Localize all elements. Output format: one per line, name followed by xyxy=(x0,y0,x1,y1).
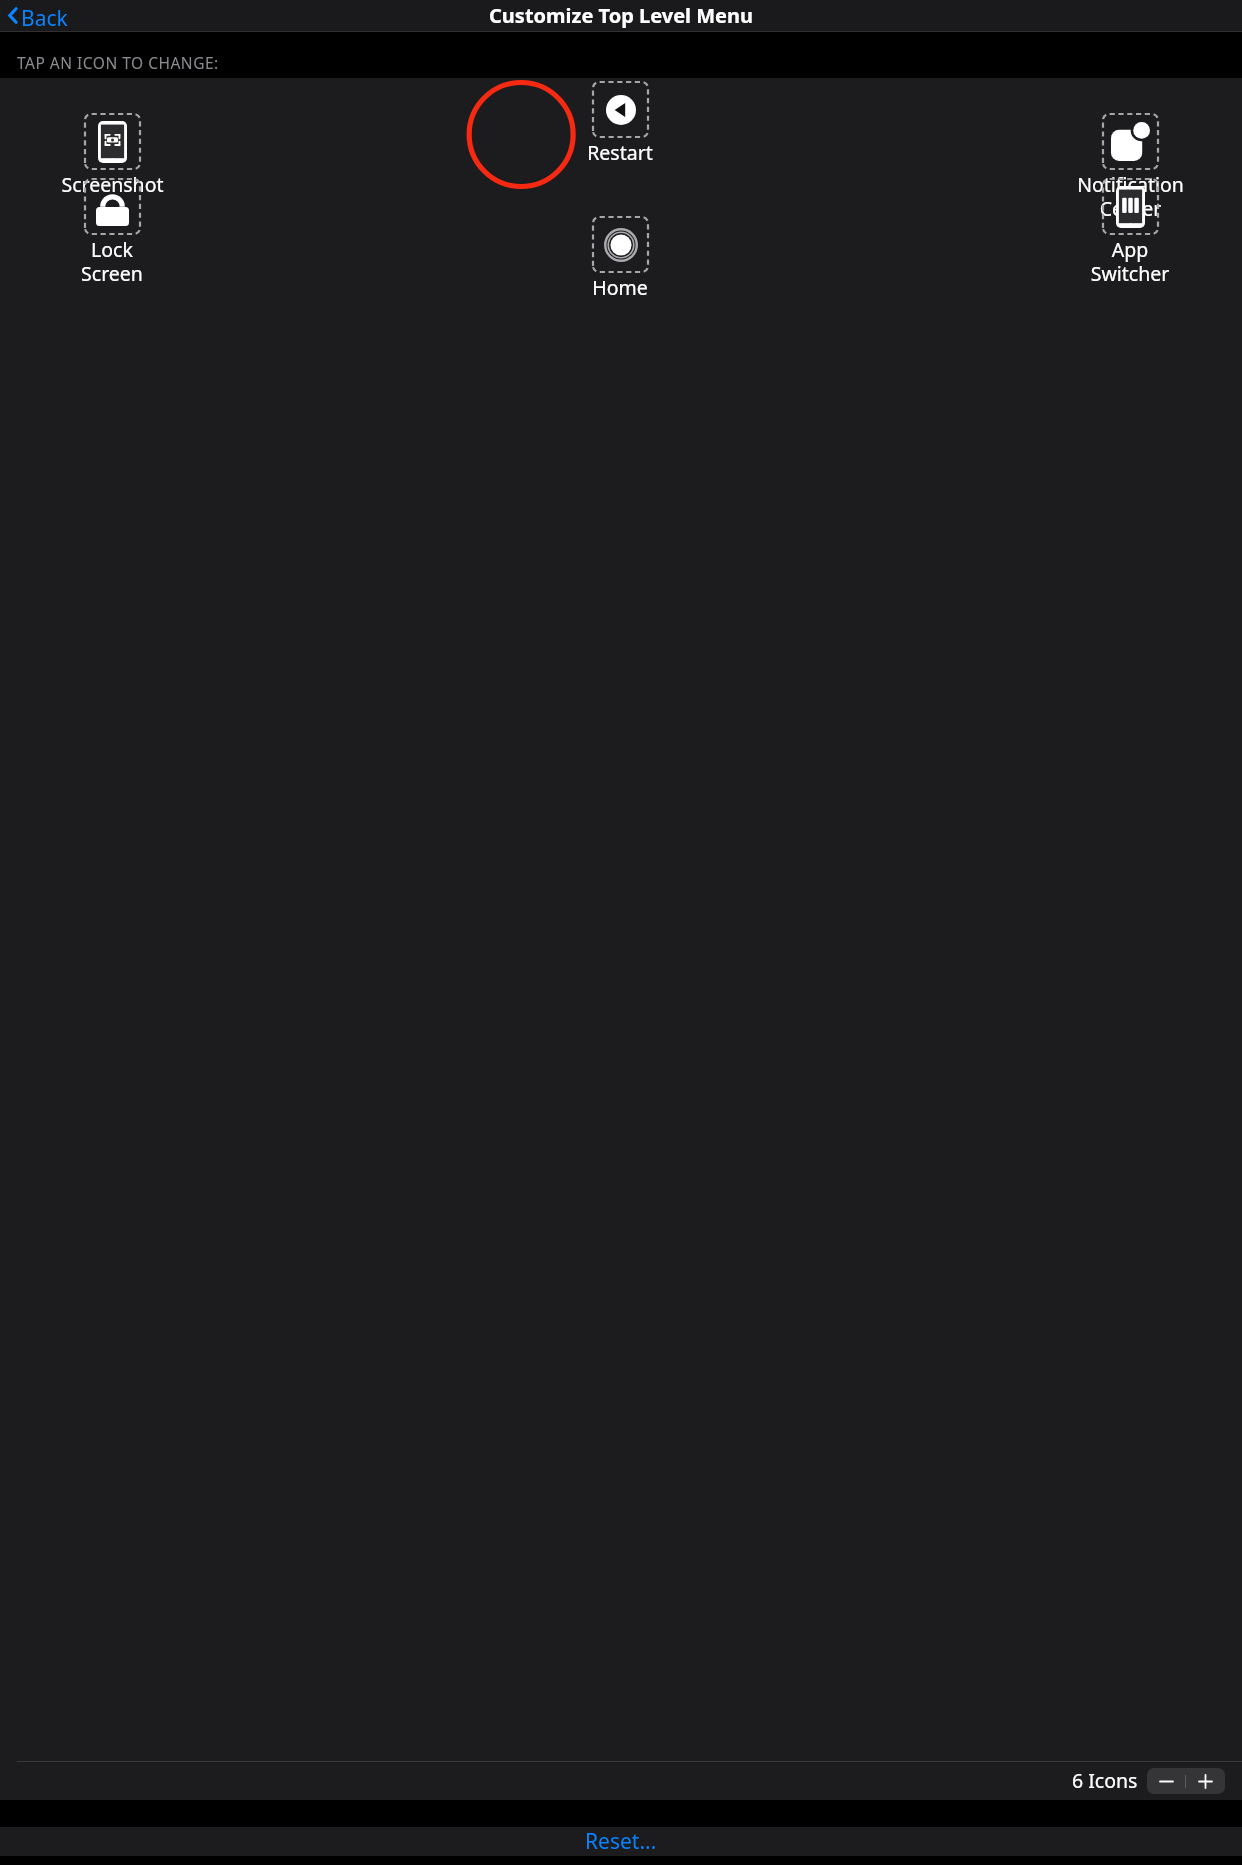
staticText: Home xyxy=(592,274,648,301)
staticText: Notification Center xyxy=(1077,171,1184,222)
staticText: Lock Screen xyxy=(81,236,143,287)
button[interactable]: Add icon xyxy=(1186,1768,1225,1794)
staticText: Reset... xyxy=(585,1827,657,1856)
staticText: Customize Top Level Menu xyxy=(489,2,754,29)
button[interactable]: Restart xyxy=(565,82,675,166)
staticText: App Switcher xyxy=(1075,236,1185,287)
button[interactable]: Reset... xyxy=(0,1827,1242,1856)
button[interactable]: Home xyxy=(565,217,675,301)
button[interactable]: App Switcher xyxy=(1075,179,1185,287)
staticText: Screenshot xyxy=(61,171,164,198)
button[interactable]: Back xyxy=(3,0,74,31)
button[interactable]: Lock Screen xyxy=(57,179,167,287)
button[interactable]: Screenshot xyxy=(57,114,167,198)
staticText: Restart xyxy=(587,139,653,166)
button[interactable]: Notification Center xyxy=(1075,114,1185,222)
staticText: 6 Icons xyxy=(1072,1767,1138,1794)
staticText: TAP AN ICON TO CHANGE: xyxy=(17,52,219,73)
staticText: Back xyxy=(21,4,68,27)
button[interactable]: Remove icon xyxy=(1147,1768,1185,1794)
